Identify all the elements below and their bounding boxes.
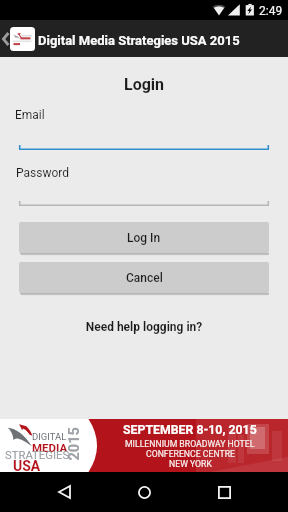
button[interactable]: Cancel bbox=[19, 262, 269, 293]
button[interactable]: Home bbox=[124, 472, 164, 512]
staticText: NEW YORK bbox=[169, 459, 212, 469]
staticText: 2:49 bbox=[259, 4, 283, 18]
staticText: USA bbox=[13, 458, 41, 474]
button[interactable]: Back bbox=[44, 472, 84, 512]
staticText: Password bbox=[16, 166, 70, 180]
button[interactable] bbox=[0, 200, 288, 208]
staticText: MILLENNIUM BROADWAY HOTEL bbox=[125, 439, 255, 449]
button[interactable]: App logo bbox=[10, 27, 35, 51]
staticText: Email bbox=[15, 108, 45, 122]
staticText: DIGITAL bbox=[32, 431, 67, 442]
button[interactable]: Need help logging in? bbox=[0, 320, 288, 334]
staticText: Login bbox=[0, 75, 288, 94]
button[interactable]: Recent apps bbox=[204, 472, 244, 512]
button[interactable] bbox=[0, 144, 288, 152]
staticText: Log In bbox=[127, 231, 161, 245]
button[interactable]: Log In bbox=[19, 222, 269, 253]
button[interactable]: DIGITAL bbox=[0, 419, 288, 472]
staticText: Cancel bbox=[126, 271, 163, 285]
staticText: SEPTEMBER 8-10, 2015 bbox=[123, 423, 257, 437]
staticText: Digital Media Strategies USA 2015 bbox=[38, 33, 240, 48]
staticText: MEDIA bbox=[32, 441, 68, 454]
staticText: STRATEGIES bbox=[5, 449, 70, 462]
staticText: 2015 bbox=[65, 426, 82, 460]
button[interactable]: Navigate up bbox=[0, 20, 11, 57]
staticText: CONFERENCE CENTRE bbox=[146, 449, 235, 459]
